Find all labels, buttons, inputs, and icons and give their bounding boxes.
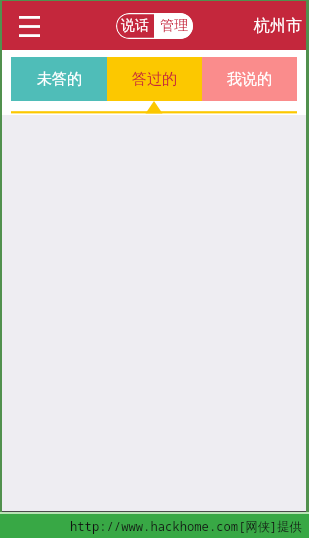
staticText: 管理 [160, 17, 188, 35]
button[interactable]: 说话 [116, 13, 154, 39]
staticText: 说话 [121, 17, 149, 35]
staticText: 我说的 [227, 70, 272, 89]
button[interactable]: 答过的 [107, 57, 202, 101]
staticText: 未答的 [37, 70, 82, 89]
button[interactable]: Menu [10, 7, 48, 45]
staticText: 杭州市 [254, 16, 302, 36]
button[interactable]: 管理 [154, 13, 193, 39]
staticText: http://www.hackhome.com[网侠]提供 [70, 518, 302, 535]
staticText: 答过的 [132, 70, 177, 89]
button[interactable]: 未答的 [11, 57, 107, 101]
button[interactable]: 我说的 [202, 57, 297, 101]
